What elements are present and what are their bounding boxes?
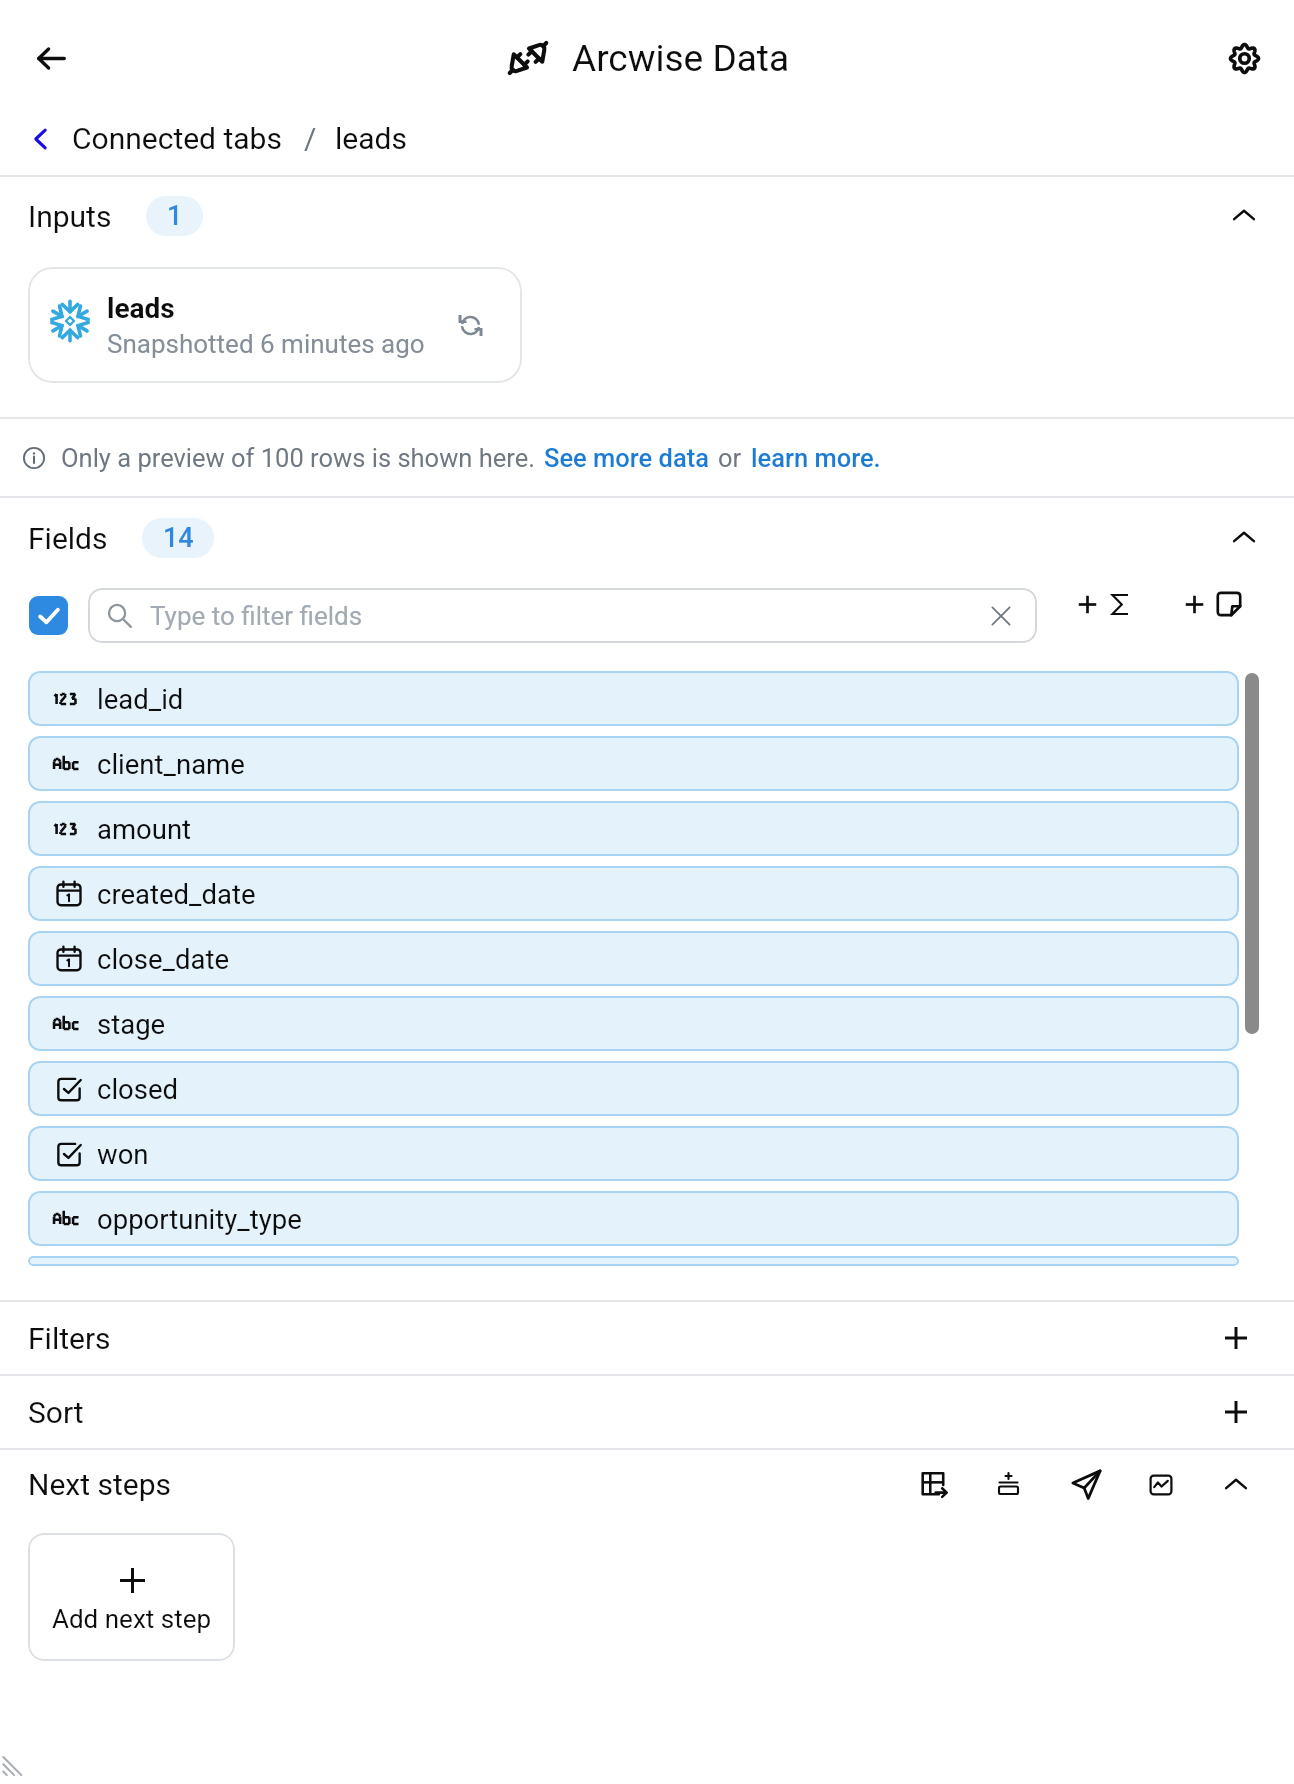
button[interactable]: Export table bbox=[920, 1471, 947, 1498]
button[interactable]: created_date bbox=[28, 866, 1239, 921]
button[interactable]: Collapse Fields bbox=[1216, 510, 1272, 566]
staticText: stage bbox=[97, 1008, 166, 1040]
button[interactable]: close_date bbox=[28, 931, 1239, 986]
button[interactable]: Add aggregate bbox=[1037, 582, 1159, 649]
staticText: created_date bbox=[97, 878, 256, 910]
button[interactable]: stage bbox=[28, 996, 1239, 1051]
staticText: leads bbox=[107, 292, 175, 325]
staticText: opportunity_type bbox=[97, 1203, 302, 1235]
button[interactable]: lead_id bbox=[28, 671, 1239, 726]
staticText: or bbox=[718, 443, 742, 473]
staticText: Type to filter fields bbox=[150, 601, 363, 631]
staticText: amount bbox=[97, 813, 192, 845]
staticText: client_name bbox=[97, 748, 245, 780]
staticText: Fields bbox=[28, 521, 108, 556]
button[interactable]: Back bbox=[16, 23, 86, 93]
button[interactable]: Add next step bbox=[28, 1533, 235, 1661]
staticText: Add next step bbox=[52, 1604, 212, 1634]
staticText: / bbox=[304, 121, 317, 156]
button[interactable]: Connected tabs bbox=[0, 121, 286, 156]
button[interactable] bbox=[28, 1256, 1239, 1266]
button[interactable]: closed bbox=[28, 1061, 1239, 1116]
button[interactable]: Collapse next steps bbox=[1222, 1471, 1250, 1499]
staticText: Next steps bbox=[28, 1467, 171, 1502]
button[interactable]: Sort bbox=[0, 1376, 1294, 1448]
staticText: Sort bbox=[28, 1395, 84, 1430]
staticText: Arcwise Data bbox=[572, 37, 790, 80]
staticText: closed bbox=[97, 1073, 179, 1105]
button[interactable]: leads bbox=[28, 267, 522, 383]
button[interactable]: Add note bbox=[1159, 580, 1274, 650]
button[interactable]: Collapse Inputs bbox=[1216, 188, 1272, 244]
staticText: 1 bbox=[167, 200, 183, 232]
staticText: Snapshotted 6 minutes ago bbox=[107, 329, 425, 359]
button[interactable]: Add formula bbox=[996, 1472, 1021, 1497]
staticText: Only a preview of 100 rows is shown here… bbox=[61, 443, 535, 473]
button[interactable]: Filters bbox=[0, 1302, 1294, 1374]
button[interactable]: Type to filter fields bbox=[88, 588, 1037, 643]
button[interactable]: Select all fields bbox=[29, 596, 68, 635]
button[interactable]: See more data bbox=[544, 443, 709, 473]
button[interactable]: won bbox=[28, 1126, 1239, 1181]
button[interactable]: Chart bbox=[1148, 1472, 1174, 1498]
button[interactable]: amount bbox=[28, 801, 1239, 856]
staticText: Inputs bbox=[28, 199, 112, 234]
button[interactable]: opportunity_type bbox=[28, 1191, 1239, 1246]
button[interactable]: Send bbox=[1072, 1470, 1101, 1499]
button[interactable]: Clear filter bbox=[981, 596, 1021, 636]
staticText: Filters bbox=[28, 1321, 111, 1356]
button[interactable]: Refresh bbox=[448, 303, 492, 347]
staticText: leads bbox=[335, 121, 407, 156]
button[interactable]: client_name bbox=[28, 736, 1239, 791]
staticText: close_date bbox=[97, 943, 229, 975]
button[interactable]: learn more. bbox=[751, 443, 881, 473]
button[interactable]: Settings bbox=[1212, 26, 1276, 90]
staticText: Connected tabs bbox=[72, 121, 282, 156]
staticText: lead_id bbox=[97, 683, 184, 715]
staticText: 14 bbox=[163, 522, 194, 554]
staticText: won bbox=[97, 1138, 149, 1170]
